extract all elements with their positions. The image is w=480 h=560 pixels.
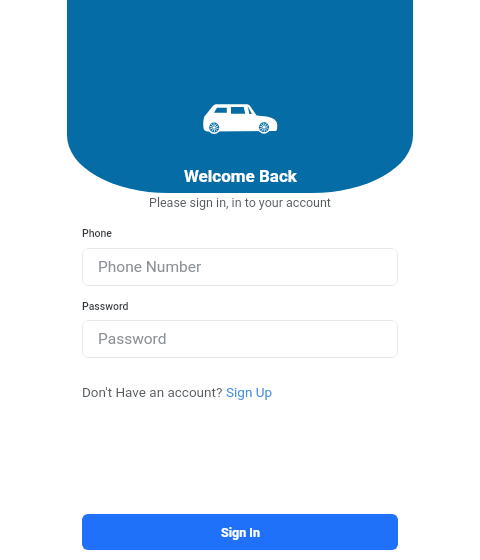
staticText: Password: [98, 330, 167, 348]
staticText: Welcome Back: [184, 166, 297, 186]
button[interactable]: Phone Number: [82, 248, 398, 286]
button[interactable]: Password: [82, 320, 398, 358]
staticText: Phone Number: [98, 258, 202, 276]
staticText: Phone: [82, 227, 112, 239]
staticText: Sign Up: [226, 384, 273, 400]
staticText: Please sign in, in to your account: [0, 195, 480, 210]
staticText: Don't Have an account?: [82, 384, 226, 400]
staticText: Password: [82, 300, 129, 312]
button[interactable]: Sign Up: [226, 384, 273, 400]
staticText: Sign In: [221, 525, 260, 540]
button[interactable]: Sign In: [82, 514, 398, 550]
